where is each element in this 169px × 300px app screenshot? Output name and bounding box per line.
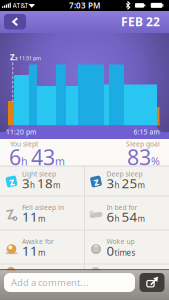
- button[interactable]: Share: [139, 273, 164, 292]
- staticText: 11:20 pm: [6, 128, 36, 136]
- staticText: Woke up: [106, 237, 134, 246]
- staticText: In bed for: [106, 203, 137, 212]
- staticText: Add a comment...: [11, 276, 89, 289]
- staticText: 11m: [22, 242, 45, 259]
- staticText: Zz 11:31 pm: [10, 52, 41, 62]
- staticText: Deep sleep: [106, 170, 142, 178]
- staticText: Sleep goal: [126, 140, 160, 148]
- staticText: z: [93, 174, 98, 189]
- staticText: 7:03 PM: [69, 0, 100, 11]
- staticText: Z: [6, 205, 14, 223]
- button[interactable]: Add a comment...: [4, 273, 135, 292]
- staticText: 3h 18m: [22, 174, 60, 192]
- staticText: 0times: [106, 242, 135, 259]
- staticText: AT&T: [12, 1, 28, 10]
- button[interactable]: Back: [4, 14, 26, 29]
- staticText: 3h 25m: [106, 174, 144, 192]
- staticText: Light sleep: [22, 170, 56, 178]
- staticText: 83%: [127, 143, 160, 171]
- staticText: 6:15 am: [133, 128, 159, 136]
- staticText: 11m: [22, 208, 45, 225]
- staticText: 6h 43m: [9, 143, 65, 171]
- staticText: z: [9, 174, 14, 189]
- staticText: Fell asleep in: [22, 203, 64, 212]
- staticText: FEB 22: [121, 13, 160, 29]
- staticText: 6h 54m: [106, 208, 144, 225]
- staticText: You slept: [10, 140, 38, 148]
- staticText: Awake for: [22, 237, 54, 246]
